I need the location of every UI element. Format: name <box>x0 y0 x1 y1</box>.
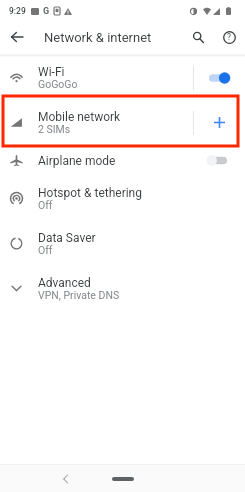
button[interactable]: Search <box>183 21 214 53</box>
staticText: Data Saver <box>38 231 96 245</box>
button[interactable]: Add SIM <box>194 100 245 145</box>
button[interactable]: Mobile network <box>0 100 245 145</box>
button[interactable]: Hotspot & tethering <box>0 176 245 221</box>
button[interactable]: Airplane mode <box>0 145 245 176</box>
button[interactable]: Data Saver <box>0 221 245 266</box>
staticText: ? <box>227 32 232 42</box>
staticText: GoGoGo <box>38 78 78 90</box>
button[interactable]: Help <box>214 21 245 53</box>
staticText: 2 SIMs <box>38 123 71 135</box>
button[interactable]: Back <box>0 21 33 53</box>
staticText: Off <box>38 199 53 211</box>
staticText: Advanced <box>38 276 91 290</box>
staticText: Hotspot & tethering <box>38 186 142 200</box>
staticText: VPN, Private DNS <box>38 289 120 301</box>
staticText: Wi-Fi <box>38 65 65 79</box>
staticText: 9:29 <box>9 6 26 16</box>
button[interactable]: Toggle Airplane mode <box>192 145 245 176</box>
button[interactable]: Home <box>112 477 134 481</box>
button[interactable]: Wi-Fi <box>0 55 245 100</box>
staticText: Network & internet <box>44 30 152 45</box>
button[interactable]: Back <box>56 470 74 488</box>
button[interactable]: Advanced <box>0 266 245 311</box>
button[interactable]: Toggle Wi-Fi <box>206 55 228 100</box>
staticText: Mobile network <box>38 110 121 124</box>
staticText: Airplane mode <box>38 154 116 168</box>
staticText: Off <box>38 244 53 256</box>
staticText: G <box>43 6 50 17</box>
